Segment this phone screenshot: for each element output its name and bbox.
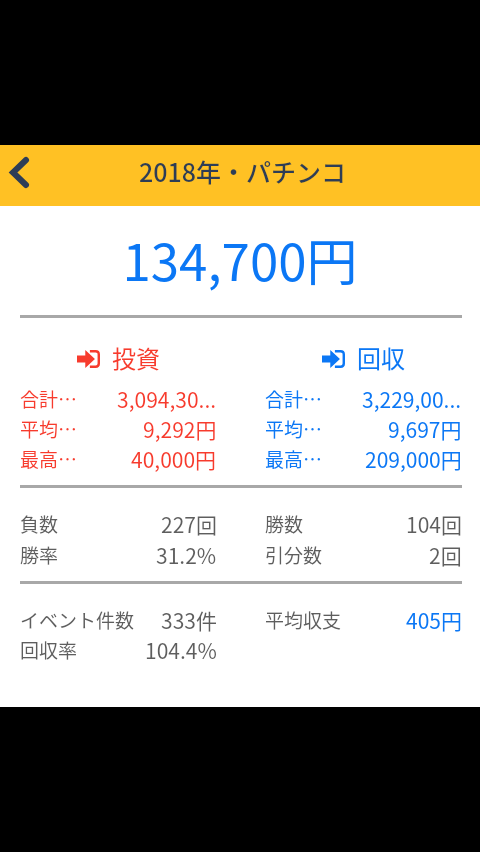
button[interactable]: 最高… (20, 443, 217, 475)
staticText: 平均収支 (265, 606, 342, 634)
button[interactable]: 平均… (20, 413, 217, 445)
staticText: 回収 (357, 340, 405, 372)
button[interactable]: 回収 (265, 340, 462, 372)
button[interactable]: 勝率 (20, 539, 217, 571)
staticText: 40,000円 (131, 444, 217, 474)
staticText: 134,700円 (0, 222, 480, 296)
staticText: 最高… (20, 445, 78, 473)
staticText: 負数 (20, 510, 59, 538)
staticText: 勝数 (265, 510, 304, 538)
staticText: 104回 (406, 509, 462, 539)
button[interactable]: 負数 (20, 508, 217, 540)
button[interactable]: 投資 (20, 340, 217, 372)
staticText: 2回 (429, 540, 462, 570)
button[interactable]: 引分数 (265, 539, 462, 571)
button[interactable]: Back (0, 142, 38, 203)
button[interactable]: 最高… (265, 443, 462, 475)
staticText: 合計… (20, 385, 78, 413)
button[interactable]: 平均… (265, 413, 462, 445)
button[interactable]: イベント件数 (20, 604, 217, 636)
staticText: 最高… (265, 445, 323, 473)
staticText: 勝率 (20, 541, 59, 569)
button[interactable]: 勝数 (265, 508, 462, 540)
staticText: 回収率 (20, 636, 78, 664)
staticText: 209,000円 (365, 444, 462, 474)
staticText: 3,229,00... (362, 384, 462, 414)
staticText: 2018年・パチンコ (139, 153, 347, 189)
button[interactable]: 回収率 (20, 634, 217, 666)
button[interactable]: 合計… (265, 383, 462, 415)
staticText: 9,292円 (143, 414, 217, 444)
staticText: 平均… (265, 415, 323, 443)
staticText: 333件 (161, 605, 217, 635)
staticText: 合計… (265, 385, 323, 413)
staticText: 3,094,30... (117, 384, 217, 414)
staticText: イベント件数 (20, 606, 135, 634)
staticText: 104.4% (145, 635, 217, 665)
staticText: 9,697円 (388, 414, 462, 444)
staticText: 31.2% (156, 540, 217, 570)
staticText: 405円 (406, 605, 462, 635)
button[interactable]: 平均収支 (265, 604, 462, 636)
button[interactable]: 合計… (20, 383, 217, 415)
staticText: 平均… (20, 415, 78, 443)
staticText: 227回 (161, 509, 217, 539)
staticText: 投資 (112, 340, 160, 372)
staticText: 引分数 (265, 541, 323, 569)
